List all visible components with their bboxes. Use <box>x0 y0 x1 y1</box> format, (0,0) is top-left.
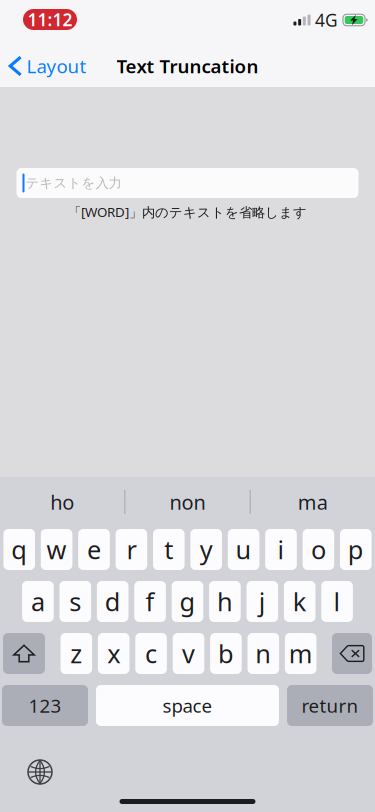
button[interactable]: f <box>134 581 166 622</box>
staticText: e <box>87 533 101 566</box>
button[interactable]: p <box>340 529 372 570</box>
button[interactable]: non <box>125 476 250 528</box>
staticText: c <box>145 637 157 670</box>
staticText: Layout <box>26 54 86 78</box>
staticText: o <box>311 533 326 566</box>
staticText: 11:12 <box>27 8 72 31</box>
staticText: p <box>348 533 364 566</box>
staticText: 4G <box>315 8 338 31</box>
staticText: t <box>164 533 173 566</box>
button[interactable]: v <box>173 633 204 674</box>
button[interactable]: 123 <box>2 685 88 726</box>
button[interactable]: o <box>303 529 334 570</box>
button[interactable]: r <box>116 529 147 570</box>
staticText: j <box>259 585 266 618</box>
staticText: h <box>217 585 233 618</box>
button[interactable]: u <box>228 529 259 570</box>
staticText: l <box>334 585 341 618</box>
staticText: Text Truncation <box>116 54 258 78</box>
button[interactable]: n <box>247 633 279 674</box>
staticText: k <box>293 585 307 618</box>
staticText: i <box>277 533 284 566</box>
staticText: z <box>70 637 82 670</box>
button[interactable]: Shift <box>3 633 45 674</box>
staticText: y <box>200 533 213 566</box>
button[interactable]: y <box>190 529 222 570</box>
button[interactable]: s <box>59 581 91 622</box>
staticText: u <box>236 533 252 566</box>
button[interactable]: h <box>209 581 241 622</box>
staticText: ho <box>50 489 74 515</box>
staticText: r <box>126 533 136 566</box>
staticText: s <box>69 585 81 618</box>
staticText: v <box>182 637 195 670</box>
staticText: d <box>105 585 121 618</box>
staticText: b <box>218 637 234 670</box>
staticText: space <box>162 693 212 718</box>
button[interactable]: ho <box>0 476 124 528</box>
button[interactable]: space <box>96 685 279 726</box>
button[interactable]: j <box>246 581 278 622</box>
button[interactable]: d <box>97 581 128 622</box>
staticText: n <box>255 637 271 670</box>
staticText: non <box>169 489 205 515</box>
button[interactable]: b <box>210 633 242 674</box>
button[interactable]: m <box>285 633 316 674</box>
staticText: m <box>289 637 313 670</box>
button[interactable]: c <box>135 633 167 674</box>
staticText: f <box>146 585 155 618</box>
staticText: ma <box>298 489 328 515</box>
staticText: 123 <box>28 693 61 718</box>
button[interactable]: Delete <box>332 633 372 674</box>
button[interactable]: ma <box>250 476 375 528</box>
staticText: a <box>31 585 45 618</box>
button[interactable]: t <box>153 529 185 570</box>
button[interactable]: i <box>265 529 297 570</box>
button[interactable]: q <box>3 529 35 570</box>
button[interactable]: e <box>78 529 110 570</box>
button[interactable]: return <box>287 685 373 726</box>
staticText: w <box>47 533 67 566</box>
staticText: g <box>179 585 195 618</box>
button[interactable]: g <box>172 581 203 622</box>
staticText: 「[WORD]」内のテキストを省略します <box>68 203 307 221</box>
button[interactable]: k <box>284 581 315 622</box>
button[interactable]: l <box>321 581 353 622</box>
button[interactable]: Next keyboard <box>0 750 80 794</box>
button[interactable]: a <box>22 581 54 622</box>
staticText: q <box>11 533 27 566</box>
staticText: return <box>301 693 358 718</box>
button[interactable]: w <box>41 529 72 570</box>
button[interactable]: z <box>60 633 92 674</box>
button[interactable]: Layout <box>0 44 92 88</box>
staticText: x <box>107 637 120 670</box>
staticText: テキストを入力 <box>25 175 121 191</box>
button[interactable]: x <box>98 633 129 674</box>
